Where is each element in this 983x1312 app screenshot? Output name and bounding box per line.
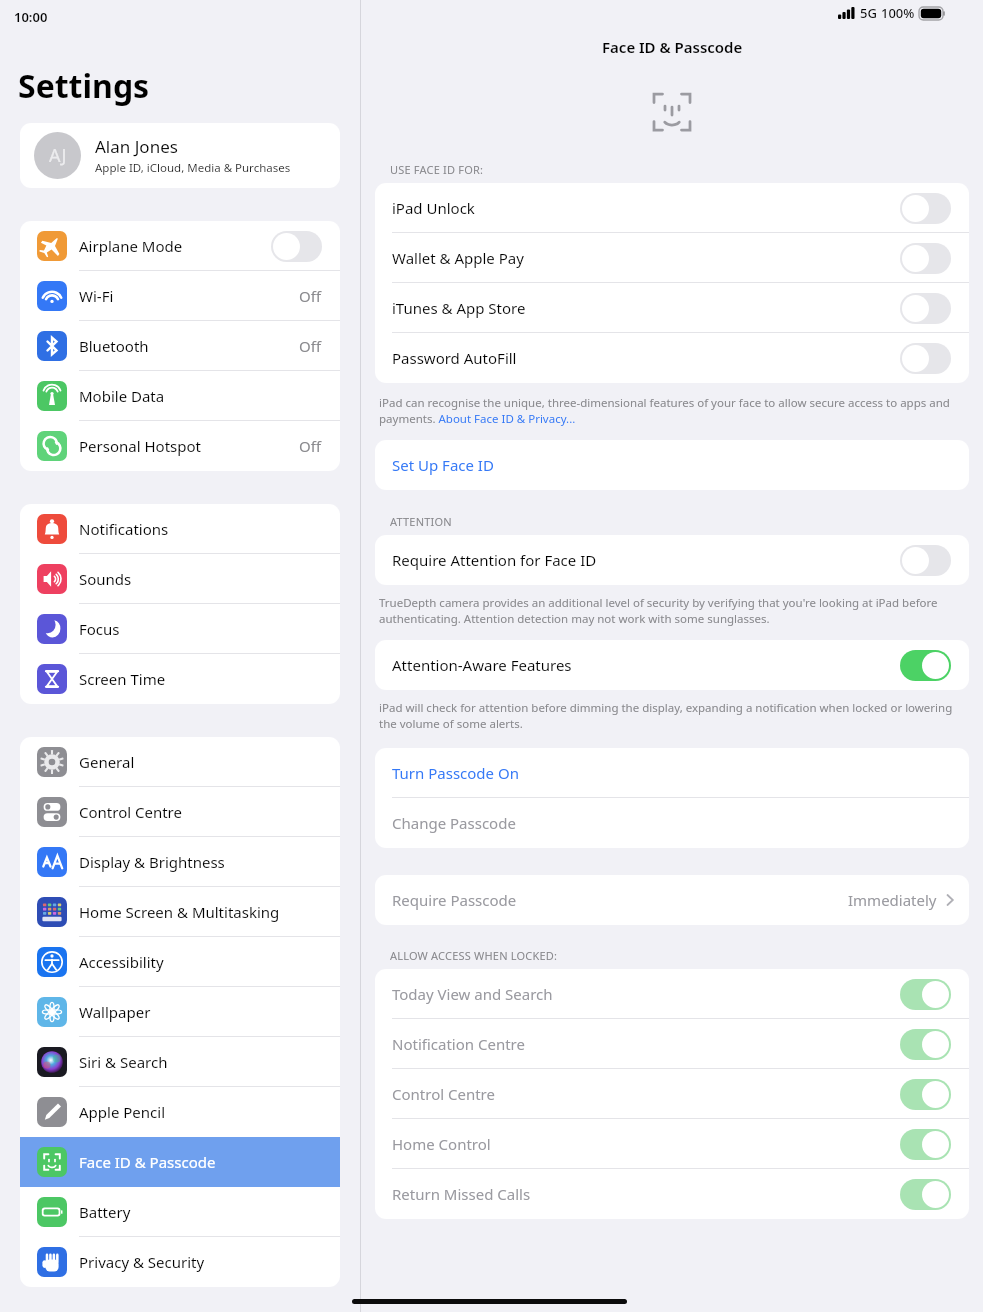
staticText: Screen Time (79, 669, 166, 689)
staticText: 10:00 (14, 8, 48, 26)
staticText: Control Centre (392, 1084, 495, 1104)
staticText: Bluetooth (79, 336, 149, 356)
button[interactable]: Today View and Search (375, 969, 969, 1019)
button[interactable]: Bluetooth (20, 321, 340, 371)
staticText: Home Control (392, 1134, 491, 1154)
button[interactable]: Toggle (900, 1179, 951, 1210)
button[interactable]: Change Passcode (375, 798, 969, 848)
button[interactable]: Focus (20, 604, 340, 654)
button[interactable]: Wallet & Apple Pay (375, 233, 969, 283)
button[interactable]: Home Screen & Multitasking (20, 887, 340, 937)
staticText: Accessibility (79, 952, 164, 972)
button[interactable]: Face ID & Passcode (20, 1137, 340, 1187)
button[interactable]: General (20, 737, 340, 787)
staticText: iPad Unlock (392, 198, 475, 218)
button[interactable]: Siri & Search (20, 1037, 340, 1087)
staticText: Face ID & Passcode (602, 37, 743, 57)
button[interactable]: Notification Centre (375, 1019, 969, 1069)
button[interactable]: Turn Passcode On (375, 748, 969, 798)
staticText: Today View and Search (392, 984, 553, 1004)
button[interactable]: Toggle (900, 243, 951, 274)
staticText: Sounds (79, 569, 132, 589)
button[interactable]: Attention-Aware Features (375, 640, 969, 690)
staticText: Off (299, 436, 322, 456)
button[interactable]: Accessibility (20, 937, 340, 987)
button[interactable]: Notifications (20, 504, 340, 554)
button[interactable]: Control Centre (375, 1069, 969, 1119)
staticText: Focus (79, 619, 120, 639)
staticText: Notification Centre (392, 1034, 525, 1054)
staticText: TrueDepth camera provides an additional … (379, 595, 965, 626)
staticText: Change Passcode (392, 813, 516, 833)
staticText: ALLOW ACCESS WHEN LOCKED: (390, 948, 558, 963)
button[interactable]: Toggle (900, 979, 951, 1010)
staticText: Mobile Data (79, 386, 165, 406)
button[interactable]: Wi-Fi (20, 271, 340, 321)
button[interactable]: Toggle (900, 1129, 951, 1160)
staticText: Alan Jones (95, 135, 178, 158)
staticText: Display & Brightness (79, 852, 225, 872)
staticText: AJ (49, 143, 67, 168)
button[interactable]: Toggle (900, 1079, 951, 1110)
staticText: 100% (881, 4, 915, 22)
staticText: Return Missed Calls (392, 1184, 531, 1204)
staticText: Privacy & Security (79, 1252, 205, 1272)
staticText: iPad will check for attention before dim… (379, 700, 965, 731)
staticText: iPad can recognise the unique, three-dim… (379, 395, 965, 426)
staticText: iTunes & App Store (392, 298, 526, 318)
staticText: Settings (18, 64, 150, 108)
staticText: Require Attention for Face ID (392, 550, 597, 570)
button[interactable]: Toggle (900, 193, 951, 224)
button[interactable]: Privacy & Security (20, 1237, 340, 1287)
button[interactable]: Control Centre (20, 787, 340, 837)
staticText: Apple ID, iCloud, Media & Purchases (95, 160, 291, 176)
button[interactable]: Toggle (900, 650, 951, 681)
button[interactable]: Set Up Face ID (375, 440, 969, 490)
staticText: Apple Pencil (79, 1102, 166, 1122)
staticText: General (79, 752, 135, 772)
staticText: Wi-Fi (79, 286, 114, 306)
button[interactable]: iPad Unlock (375, 183, 969, 233)
button[interactable]: Password AutoFill (375, 333, 969, 383)
button[interactable]: Airplane Mode (20, 221, 340, 271)
button[interactable]: Apple Pencil (20, 1087, 340, 1137)
button[interactable]: Home Control (375, 1119, 969, 1169)
button[interactable]: Return Missed Calls (375, 1169, 969, 1219)
button[interactable]: iTunes & App Store (375, 283, 969, 333)
button[interactable]: Personal Hotspot (20, 421, 340, 471)
button[interactable]: Toggle (271, 231, 322, 262)
button[interactable]: AJ (20, 123, 340, 188)
staticText: Password AutoFill (392, 348, 517, 368)
button[interactable]: Require Attention for Face ID (375, 535, 969, 585)
button[interactable]: Sounds (20, 554, 340, 604)
staticText: Off (299, 336, 322, 356)
button[interactable]: Toggle (900, 343, 951, 374)
staticText: Home Screen & Multitasking (79, 902, 280, 922)
button[interactable]: Toggle (900, 545, 951, 576)
staticText: Battery (79, 1202, 131, 1222)
staticText: 5G (860, 4, 877, 22)
button[interactable]: Mobile Data (20, 371, 340, 421)
button[interactable]: Wallpaper (20, 987, 340, 1037)
staticText: Notifications (79, 519, 169, 539)
staticText: Control Centre (79, 802, 182, 822)
button[interactable]: Display & Brightness (20, 837, 340, 887)
staticText: Attention-Aware Features (392, 655, 572, 675)
staticText: Set Up Face ID (392, 455, 494, 475)
staticText: Airplane Mode (79, 236, 183, 256)
staticText: Face ID & Passcode (79, 1152, 216, 1172)
button[interactable]: Require Passcode (375, 875, 969, 925)
staticText: Siri & Search (79, 1052, 168, 1072)
button[interactable]: Battery (20, 1187, 340, 1237)
staticText: Off (299, 286, 322, 306)
button[interactable]: Toggle (900, 293, 951, 324)
staticText: Require Passcode (392, 890, 517, 910)
staticText: ATTENTION (390, 514, 452, 529)
staticText: Personal Hotspot (79, 436, 201, 456)
button[interactable]: Toggle (900, 1029, 951, 1060)
staticText: Wallpaper (79, 1002, 151, 1022)
staticText: USE FACE ID FOR: (390, 162, 484, 177)
button[interactable]: Screen Time (20, 654, 340, 704)
staticText: Wallet & Apple Pay (392, 248, 524, 268)
staticText: Turn Passcode On (392, 763, 519, 783)
